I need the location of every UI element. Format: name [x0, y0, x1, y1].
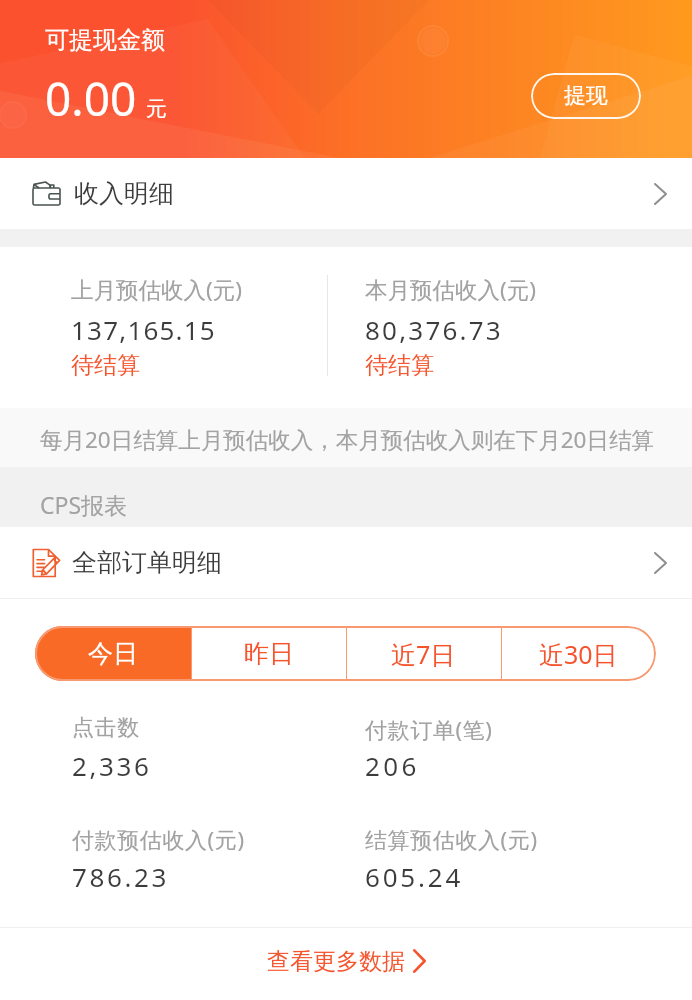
staticText: 137,165.15: [71, 312, 216, 347]
staticText: 206: [365, 748, 420, 783]
staticText: 付款预估收入(元): [72, 824, 245, 854]
staticText: 786.23: [72, 859, 169, 894]
staticText: 近7日: [391, 637, 456, 671]
staticText: 结算预估收入(元): [365, 824, 538, 854]
staticText: 605.24: [365, 859, 464, 894]
button[interactable]: 查看更多数据: [0, 930, 692, 992]
staticText: 今日: [88, 638, 138, 669]
staticText: 可提现金额: [45, 25, 165, 55]
button[interactable]: 收入明细: [0, 158, 692, 229]
staticText: 2,336: [72, 748, 152, 783]
button[interactable]: 今日: [35, 626, 191, 681]
staticText: 80,376.73: [365, 312, 503, 347]
staticText: 近30日: [539, 637, 618, 671]
staticText: 全部订单明细: [72, 547, 222, 578]
staticText: 待结算: [71, 351, 140, 380]
button[interactable]: 近7日: [346, 626, 501, 681]
staticText: 本月预估收入(元): [365, 274, 537, 305]
staticText: 点击数: [72, 714, 140, 742]
staticText: 元: [146, 96, 167, 122]
staticText: 每月20日结算上月预估收入，本月预估收入则在下月20日结算: [40, 424, 654, 455]
button[interactable]: 提现: [531, 73, 641, 119]
button[interactable]: 全部订单明细: [0, 527, 692, 598]
button[interactable]: 昨日: [191, 626, 346, 681]
staticText: CPS报表: [40, 489, 128, 520]
staticText: 提现: [564, 82, 608, 110]
staticText: 付款订单(笔): [365, 714, 493, 744]
button[interactable]: 近30日: [501, 626, 656, 681]
staticText: 查看更多数据: [267, 947, 405, 976]
staticText: 昨日: [244, 638, 294, 669]
staticText: 收入明细: [74, 178, 174, 209]
staticText: 上月预估收入(元): [71, 274, 243, 305]
staticText: 待结算: [365, 351, 434, 380]
staticText: 0.00: [45, 67, 137, 130]
